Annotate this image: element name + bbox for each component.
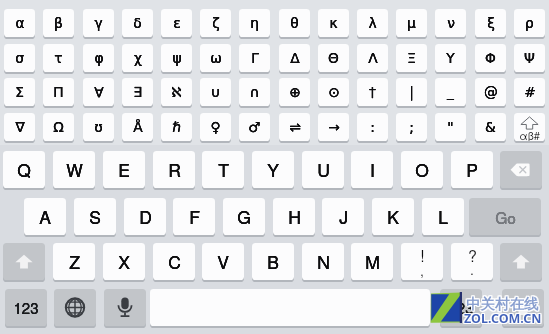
button[interactable]: κ — [318, 9, 349, 39]
button[interactable]: S — [74, 198, 116, 237]
button[interactable]: Voice input — [104, 289, 146, 328]
button[interactable]: 123 — [440, 289, 482, 328]
button[interactable]: φ — [83, 44, 114, 74]
button[interactable]: ∀ — [83, 78, 114, 108]
button[interactable]: A — [24, 198, 66, 237]
staticText: ν — [447, 15, 455, 31]
button[interactable]: η — [239, 9, 270, 39]
button[interactable]: β — [43, 9, 74, 39]
button[interactable]: K — [372, 198, 414, 237]
button[interactable]: σ — [4, 44, 35, 74]
button[interactable]: H — [273, 198, 315, 237]
button[interactable]: ℏ — [161, 113, 192, 143]
button[interactable]: Σ — [4, 78, 35, 108]
button[interactable]: Y — [252, 151, 294, 190]
button[interactable]: P — [451, 151, 493, 190]
button[interactable]: Q — [3, 151, 45, 190]
staticText: ρ — [525, 15, 534, 31]
button[interactable]: ♂ — [239, 113, 270, 143]
button[interactable]: & — [475, 113, 506, 143]
button[interactable]: ℵ — [161, 78, 192, 108]
button[interactable]: ∃ — [122, 78, 153, 108]
button[interactable]: Shift — [3, 243, 45, 282]
button[interactable]: Γ — [239, 44, 270, 74]
button[interactable]: Ξ — [396, 44, 427, 74]
button[interactable]: † — [357, 78, 388, 108]
button[interactable]: Ψ — [514, 44, 545, 74]
button[interactable]: χ — [122, 44, 153, 74]
button[interactable]: U — [302, 151, 344, 190]
button[interactable]: ⊕ — [279, 78, 310, 108]
button[interactable]: α — [4, 9, 35, 39]
button[interactable]: μ — [396, 9, 427, 39]
button[interactable]: Enter — [502, 289, 544, 328]
staticText: ν — [447, 15, 455, 31]
button[interactable]: γ — [83, 9, 114, 39]
button[interactable]: B — [252, 243, 294, 282]
button[interactable]: G — [223, 198, 265, 237]
button[interactable]: Shift — [500, 243, 542, 282]
button[interactable]: ε — [161, 9, 192, 39]
button[interactable]: # — [514, 78, 545, 108]
button[interactable]: ρ — [514, 9, 545, 39]
button[interactable]: ♀ — [200, 113, 231, 143]
button[interactable]: @ — [475, 78, 506, 108]
button[interactable]: D — [124, 198, 166, 237]
button[interactable]: Υ — [435, 44, 466, 74]
button[interactable]: O — [401, 151, 443, 190]
staticText: ZOL.COM.CN — [463, 311, 541, 328]
button[interactable]: Space — [150, 289, 430, 328]
button[interactable]: λ — [357, 9, 388, 39]
button[interactable]: ∇ — [4, 113, 35, 143]
button[interactable]: ζ — [200, 9, 231, 39]
button[interactable]: " — [435, 113, 466, 143]
button[interactable]: ξ — [475, 9, 506, 39]
button[interactable]: J — [322, 198, 364, 237]
button[interactable]: → — [318, 113, 349, 143]
button[interactable]: Π — [43, 78, 74, 108]
button[interactable]: ω — [200, 44, 231, 74]
button[interactable]: T — [202, 151, 244, 190]
button[interactable]: Backspace — [500, 151, 542, 190]
button[interactable]: ∩ — [239, 78, 270, 108]
button[interactable]: ν — [435, 9, 466, 39]
button[interactable]: ʊ — [83, 113, 114, 143]
button[interactable]: ψ — [161, 44, 192, 74]
button[interactable]: ! — [401, 243, 443, 282]
button[interactable]: | — [396, 78, 427, 108]
button[interactable]: C — [153, 243, 195, 282]
button[interactable]: τ — [43, 44, 74, 74]
button[interactable]: M — [351, 243, 393, 282]
button[interactable]: N — [302, 243, 344, 282]
button[interactable]: _ — [435, 78, 466, 108]
button[interactable]: W — [53, 151, 95, 190]
button[interactable]: ; — [396, 113, 427, 143]
button[interactable]: V — [202, 243, 244, 282]
button[interactable]: Change language — [54, 289, 96, 328]
button[interactable]: L — [422, 198, 464, 237]
button[interactable]: 123 — [5, 289, 47, 328]
button[interactable]: Φ — [475, 44, 506, 74]
button[interactable]: I — [351, 151, 393, 190]
button[interactable]: Λ — [357, 44, 388, 74]
button[interactable]: R — [153, 151, 195, 190]
button[interactable]: ∪ — [200, 78, 231, 108]
button[interactable]: Ω — [43, 113, 74, 143]
button[interactable]: ⊙ — [318, 78, 349, 108]
button[interactable]: ? — [451, 243, 493, 282]
button[interactable]: θ — [279, 9, 310, 39]
button[interactable]: X — [103, 243, 145, 282]
staticText: φ — [94, 50, 104, 66]
button[interactable]: Å — [122, 113, 153, 143]
button[interactable]: Go — [469, 198, 541, 237]
button[interactable]: ⇌ — [279, 113, 310, 143]
button[interactable]: : — [357, 113, 388, 143]
button[interactable]: Θ — [318, 44, 349, 74]
button[interactable]: Z — [53, 243, 95, 282]
button[interactable]: δ — [122, 9, 153, 39]
button[interactable]: E — [103, 151, 145, 190]
button[interactable]: F — [173, 198, 215, 237]
button[interactable]: Switch symbols — [514, 113, 545, 143]
button[interactable]: Δ — [279, 44, 310, 74]
staticText: Γ — [251, 50, 259, 66]
